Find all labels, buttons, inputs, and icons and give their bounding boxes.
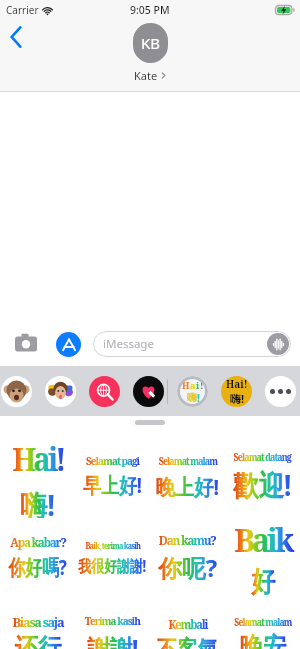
- button[interactable]: Baik: [225, 517, 300, 599]
- staticText: 嗨: [187, 391, 197, 404]
- button[interactable]: Audio message: [267, 333, 289, 355]
- staticText: Hai!: [226, 377, 248, 391]
- staticText: 还行: [15, 632, 61, 649]
- button[interactable]: Terima kasih: [75, 598, 150, 649]
- button[interactable]: Kembali: [150, 598, 225, 649]
- staticText: Selamat datang: [234, 450, 291, 464]
- staticText: 不客氣: [156, 635, 218, 649]
- staticText: 9:05 PM: [130, 3, 170, 17]
- button[interactable]: Selamat malam: [150, 436, 225, 518]
- button[interactable]: KB: [133, 23, 168, 83]
- staticText: Selamat pagi: [86, 454, 140, 468]
- staticText: Kate: [134, 68, 158, 83]
- button[interactable]: Biasa saja: [0, 598, 75, 649]
- staticText: 好: [251, 564, 275, 599]
- staticText: Biasa saja: [13, 614, 63, 630]
- staticText: 晚上好!: [155, 471, 220, 501]
- button[interactable]: Hai!: [0, 436, 75, 518]
- button[interactable]: Images: [89, 376, 120, 407]
- staticText: Selamat malam: [234, 615, 292, 629]
- button[interactable]: Hai stickers: [177, 376, 208, 407]
- button[interactable]: Baik, terima kasih: [75, 517, 150, 599]
- staticText: 嗨!: [230, 391, 245, 406]
- button[interactable]: Memoji: [1, 376, 32, 407]
- staticText: 我很好謝謝!: [78, 555, 146, 577]
- staticText: 謝謝!: [87, 631, 139, 649]
- staticText: Baik: [234, 517, 292, 562]
- button[interactable]: Apa kabar?: [0, 517, 75, 599]
- staticText: a: [190, 379, 196, 391]
- button[interactable]: iMessage: [93, 331, 291, 357]
- staticText: 你呢?: [158, 551, 218, 584]
- staticText: 早上好!: [83, 471, 142, 500]
- staticText: Kembali: [168, 615, 207, 633]
- button[interactable]: Selamat malam: [225, 598, 300, 649]
- staticText: Hai!: [12, 436, 63, 481]
- button[interactable]: Camera: [12, 330, 40, 358]
- button[interactable]: Memoji stickers: [45, 376, 76, 407]
- staticText: i: [196, 379, 200, 391]
- staticText: KB: [141, 33, 161, 53]
- staticText: 歡迎!: [233, 465, 292, 505]
- button[interactable]: Selamat datang: [225, 436, 300, 518]
- staticText: Carrier: [6, 3, 39, 17]
- button[interactable]: Hai yellow: [221, 376, 252, 407]
- button[interactable]: Dan kamu?: [150, 517, 225, 599]
- staticText: Apa kabar?: [10, 534, 66, 550]
- staticText: 嗨!: [20, 485, 56, 518]
- staticText: iMessage: [103, 336, 154, 352]
- staticText: 你好嗎?: [8, 553, 68, 582]
- staticText: !: [197, 391, 200, 405]
- staticText: Dan kamu?: [159, 532, 216, 549]
- button[interactable]: Back: [0, 21, 32, 53]
- staticText: H: [182, 379, 190, 391]
- staticText: 晚安: [240, 631, 286, 649]
- button[interactable]: App Store: [56, 332, 81, 357]
- staticText: Baik, terima kasih: [85, 540, 141, 551]
- staticText: Selamat malam: [159, 454, 217, 468]
- staticText: !: [200, 379, 204, 391]
- button[interactable]: More: [265, 376, 296, 407]
- button[interactable]: Selamat pagi: [75, 436, 150, 518]
- staticText: Terima kasih: [85, 613, 140, 629]
- button[interactable]: Digital Touch: [133, 376, 164, 407]
